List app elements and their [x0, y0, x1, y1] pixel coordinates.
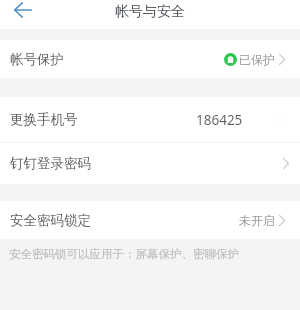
staticText: 帐号保护: [10, 51, 64, 68]
button[interactable]: 更换手机号: [0, 97, 300, 142]
staticText: 帐号与安全: [115, 3, 185, 21]
staticText: 钉钉登录密码: [10, 155, 91, 172]
button[interactable]: Back: [6, 0, 40, 20]
staticText: 安全密码锁可以应用于：屏幕保护、密聊保护: [9, 247, 239, 261]
staticText: 未开启: [239, 213, 275, 228]
staticText: 安全密码锁定: [10, 212, 91, 229]
button[interactable]: 帐号保护: [0, 40, 300, 78]
staticText: 已保护: [239, 52, 275, 67]
staticText: 186425: [196, 111, 243, 129]
button[interactable]: 钉钉登录密码: [0, 143, 300, 184]
button[interactable]: 安全密码锁定: [0, 201, 300, 239]
staticText: 更换手机号: [10, 111, 78, 128]
